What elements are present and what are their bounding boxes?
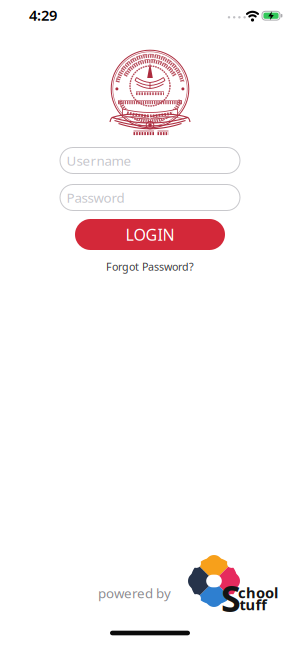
button[interactable]: LOGIN — [75, 219, 225, 250]
staticText: powered by — [98, 584, 171, 602]
staticText: chool — [238, 583, 278, 602]
staticText: Password — [66, 189, 124, 206]
staticText: Username — [66, 152, 131, 169]
button[interactable]: Forgot Password? — [106, 259, 194, 274]
staticText: tuff — [239, 595, 266, 614]
staticText: S — [221, 574, 241, 622]
button[interactable]: Password — [59, 184, 240, 211]
button[interactable]: Username — [59, 147, 240, 174]
staticText: Forgot Password? — [106, 259, 194, 274]
staticText: LOGIN — [125, 224, 174, 245]
staticText: 4:29 — [29, 5, 57, 25]
